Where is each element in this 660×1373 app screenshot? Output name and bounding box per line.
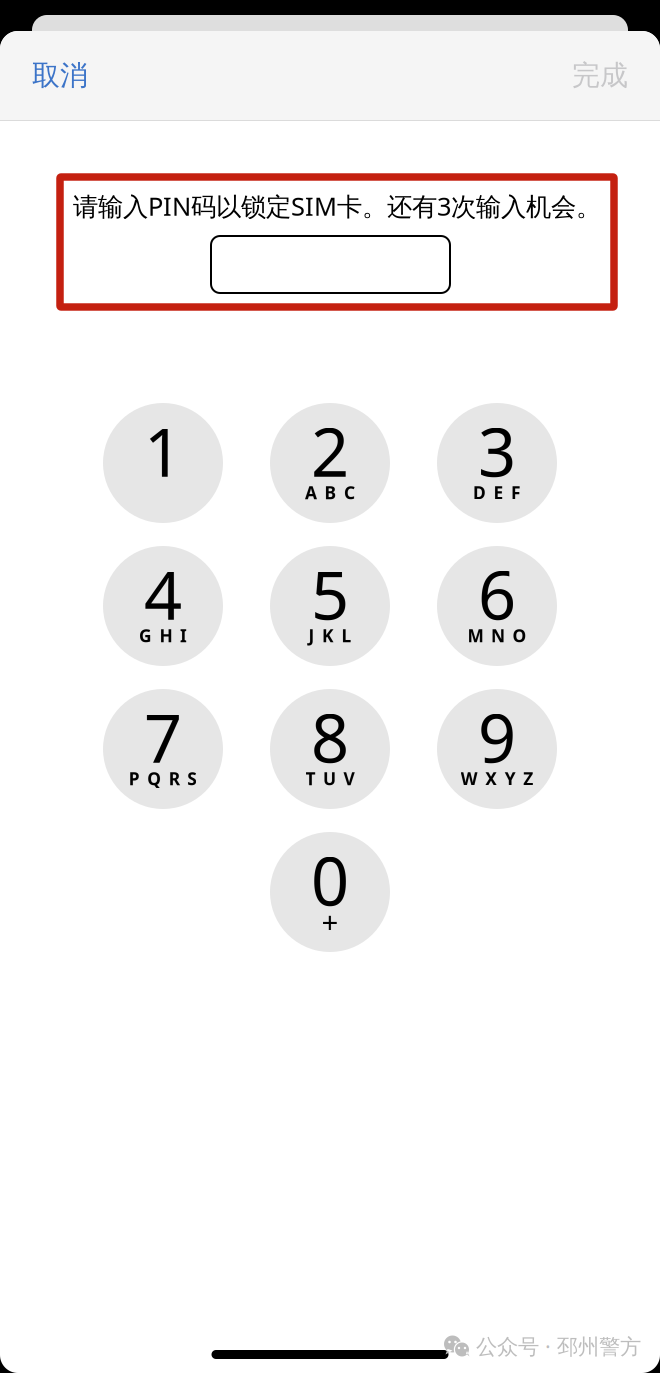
staticText: 6 — [478, 550, 516, 638]
staticText: 2 — [311, 407, 349, 495]
staticText: 7 — [144, 693, 182, 781]
staticText: TUV — [305, 767, 354, 790]
button[interactable]: 完成 — [544, 28, 660, 123]
button[interactable]: 9 WXYZ — [437, 689, 557, 809]
staticText: 取消 — [32, 58, 88, 93]
staticText: 请输入PIN码以锁定SIM卡。还有3次输入机会。 — [73, 189, 601, 223]
staticText: 8 — [311, 693, 349, 781]
staticText: MNO — [467, 624, 526, 647]
staticText: PQRS — [129, 767, 197, 790]
button[interactable]: 0 + — [270, 832, 390, 952]
button[interactable]: 1 — [103, 403, 223, 523]
staticText: 3 — [478, 407, 516, 495]
staticText: GHI — [139, 624, 187, 647]
staticText: 公众号 · 邳州警方 — [476, 1332, 641, 1360]
button[interactable]: 2 ABC — [270, 403, 390, 523]
staticText: 完成 — [572, 58, 628, 93]
staticText: ABC — [305, 481, 355, 504]
staticText: 1 — [144, 407, 182, 495]
button[interactable]: 6 MNO — [437, 546, 557, 666]
button[interactable]: 3 DEF — [437, 403, 557, 523]
staticText: 0 — [311, 836, 349, 924]
button[interactable]: 4 GHI — [103, 546, 223, 666]
button[interactable]: 5 JKL — [270, 546, 390, 666]
staticText: 9 — [478, 693, 516, 781]
staticText: 4 — [144, 550, 182, 638]
staticText: WXYZ — [461, 767, 533, 790]
staticText: JKL — [308, 624, 351, 647]
button[interactable]: 7 PQRS — [103, 689, 223, 809]
staticText: DEF — [473, 481, 521, 504]
button[interactable]: 8 TUV — [270, 689, 390, 809]
staticText: + — [321, 902, 338, 941]
button[interactable]: 取消 — [0, 28, 116, 123]
staticText: 5 — [311, 550, 349, 638]
